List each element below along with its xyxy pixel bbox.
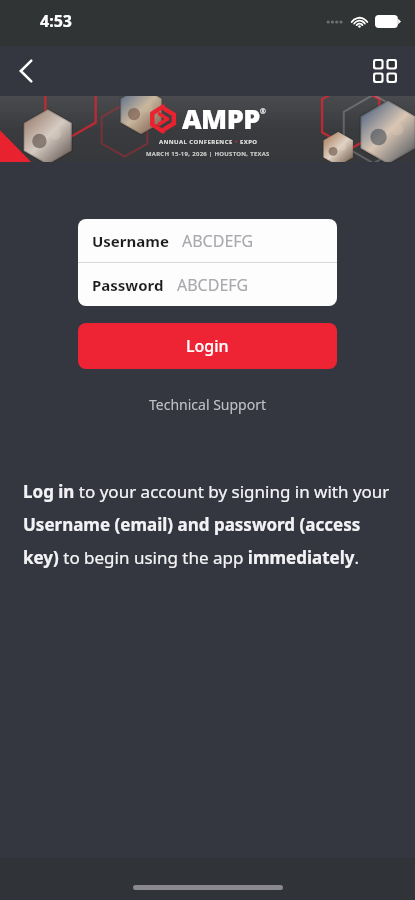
button[interactable]: Scan QR code [363, 49, 407, 93]
staticText: AMPP [182, 100, 260, 137]
staticText: Login [186, 335, 229, 357]
staticText: Username [92, 231, 169, 251]
staticText: ANNUAL CONFERENCE [159, 138, 233, 146]
staticText: ® [260, 107, 266, 117]
staticText: Log in to your account by signing in wit… [23, 480, 395, 569]
button[interactable]: Password [78, 263, 337, 306]
button[interactable]: Login [78, 323, 337, 369]
staticText: ABCDEFG [182, 230, 254, 252]
button[interactable]: Technical Support [139, 391, 277, 418]
button[interactable]: Username [78, 219, 337, 262]
staticText: 4:53 [40, 10, 72, 32]
staticText: EXPO [240, 138, 258, 146]
staticText: + [233, 138, 240, 146]
staticText: MARCH 15-19, 2026 | HOUSTON, TEXAS [146, 150, 270, 158]
staticText: Technical Support [149, 395, 267, 414]
staticText: Password [92, 275, 164, 295]
staticText: ABCDEFG [177, 274, 249, 296]
button[interactable]: Back [4, 49, 48, 93]
